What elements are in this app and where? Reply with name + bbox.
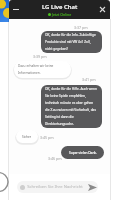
staticText: Dazu erhalten wir keine Informationen. bbox=[18, 64, 67, 75]
staticText: 3:41 pm bbox=[82, 77, 96, 82]
button[interactable]: Dazu erhalten wir keine Informationen. bbox=[18, 64, 67, 75]
button[interactable]: Minimize bbox=[10, 4, 21, 15]
button[interactable]: Sicher bbox=[16, 130, 38, 143]
button[interactable]: OK, danke für die Info. Zukünftige Produ… bbox=[45, 33, 98, 51]
staticText: Sicher bbox=[22, 135, 32, 139]
staticText: LG Live Chat bbox=[42, 3, 78, 11]
button[interactable]: Schreiben Sie Ihre Nachricht bbox=[17, 181, 98, 193]
staticText: OK, danke für die Info. Zukünftige Produ… bbox=[45, 33, 98, 51]
staticText: 3:39 pm bbox=[33, 54, 47, 59]
staticText: 3:37 pm bbox=[74, 25, 88, 30]
staticText: OK, danke für die Hilfe. Auch wenn Sie k… bbox=[45, 87, 98, 126]
staticText: Super vielen Dank. bbox=[69, 151, 97, 155]
button[interactable]: Super vielen Dank. bbox=[61, 146, 104, 159]
button[interactable]: Close chat bbox=[97, 4, 108, 15]
staticText: 3:46 pm bbox=[48, 156, 62, 161]
button[interactable]: Send message bbox=[83, 178, 101, 196]
button[interactable]: OK, danke für die Hilfe. Auch wenn Sie k… bbox=[45, 87, 98, 126]
staticText: 3:45 pm bbox=[40, 135, 54, 140]
staticText: Schreiben Sie Ihre Nachricht bbox=[25, 184, 83, 190]
staticText: Jetzt Online bbox=[51, 12, 72, 17]
